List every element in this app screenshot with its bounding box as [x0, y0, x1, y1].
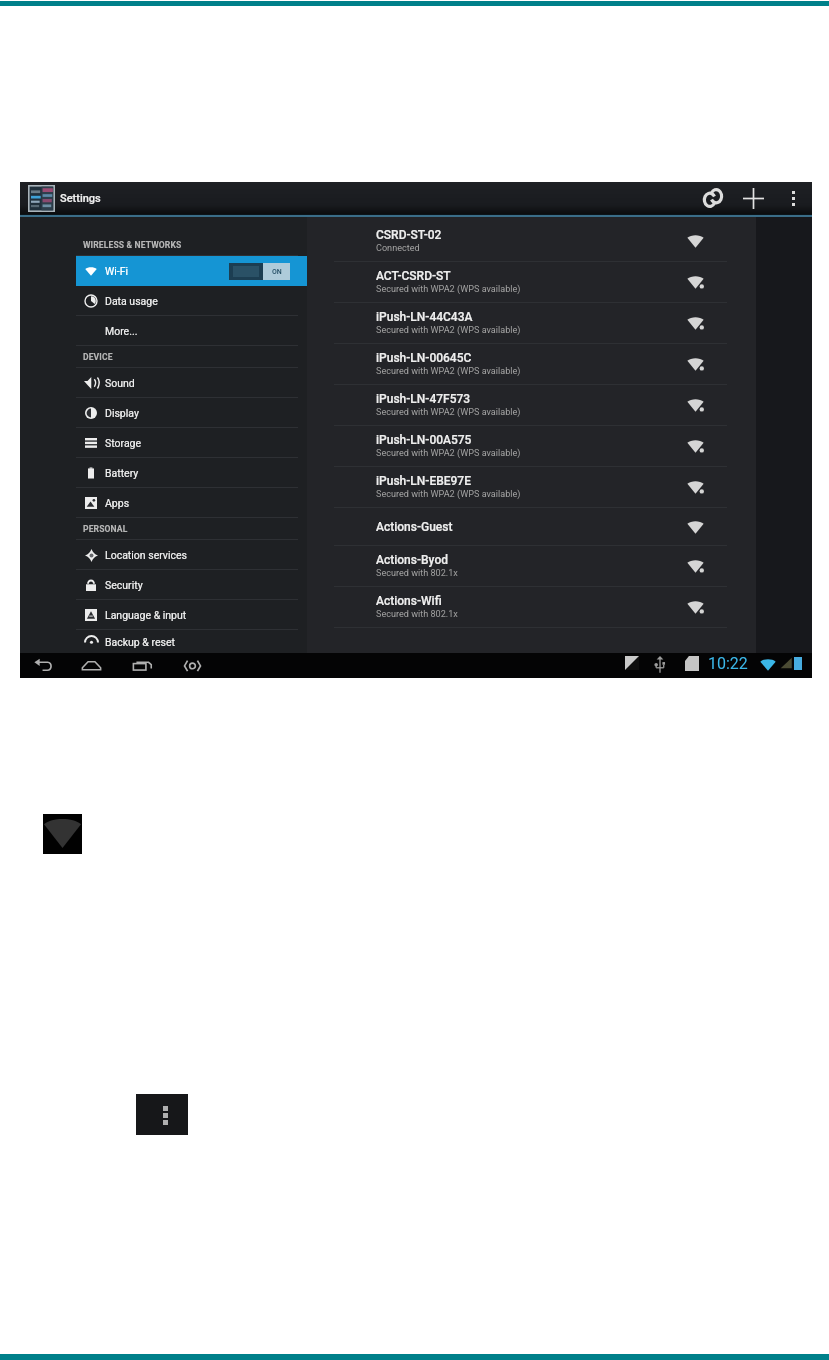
button[interactable]: iPush-LN-47F573 — [307, 385, 756, 425]
staticText: Settings — [60, 192, 101, 205]
staticText: Connected — [376, 243, 420, 254]
staticText: Actions-Guest — [376, 520, 453, 534]
staticText: Secured with WPA2 (WPS available) — [376, 489, 521, 500]
staticText: DEVICE — [83, 352, 113, 362]
staticText: Secured with WPA2 (WPS available) — [376, 448, 521, 459]
staticText: Sound — [105, 377, 135, 389]
staticText: Data usage — [105, 295, 158, 307]
button[interactable]: Add network — [733, 182, 774, 214]
staticText: iPush-LN-00645C — [376, 351, 472, 365]
button[interactable]: Sound — [76, 368, 298, 397]
staticText: Storage — [105, 437, 142, 449]
staticText: PERSONAL — [83, 524, 128, 534]
staticText: Battery — [105, 467, 139, 479]
staticText: Secured with WPA2 (WPS available) — [376, 284, 521, 295]
button[interactable]: WPS Push Button — [693, 182, 733, 214]
button[interactable]: Apps — [76, 488, 298, 517]
staticText: Actions-Byod — [376, 553, 448, 567]
button[interactable]: Home — [79, 653, 104, 678]
staticText: Secured with WPA2 (WPS available) — [376, 325, 521, 336]
staticText: iPush-LN-00A575 — [376, 433, 472, 447]
button[interactable]: Display — [76, 398, 298, 427]
staticText: Secured with WPA2 (WPS available) — [376, 407, 521, 418]
button[interactable]: iPush-LN-00A575 — [307, 426, 756, 466]
button[interactable]: Security — [76, 570, 298, 599]
staticText: Secured with WPA2 (WPS available) — [376, 366, 521, 377]
button[interactable]: Actions-Guest — [307, 508, 756, 545]
button[interactable]: Screenshot — [180, 653, 205, 678]
staticText: iPush-LN-47F573 — [376, 392, 471, 406]
staticText: CSRD-ST-02 — [376, 228, 442, 242]
button[interactable]: Actions-Wifi — [307, 587, 756, 627]
staticText: Secured with 802.1x — [376, 568, 458, 579]
staticText: ACT-CSRD-ST — [376, 269, 451, 283]
button[interactable]: Storage — [76, 428, 298, 457]
staticText: Backup & reset — [105, 636, 175, 648]
staticText: Apps — [105, 497, 130, 509]
button[interactable]: iPush-LN-00645C — [307, 344, 756, 384]
staticText: Security — [105, 579, 143, 591]
button[interactable]: More options — [774, 182, 812, 214]
staticText: Location services — [105, 549, 187, 561]
button[interactable]: Recents — [130, 653, 155, 678]
staticText: Language & input — [105, 609, 187, 621]
staticText: Actions-Wifi — [376, 594, 442, 608]
button[interactable]: Language & input — [76, 600, 298, 629]
button[interactable]: ACT-CSRD-ST — [307, 262, 756, 302]
button[interactable]: Wi-Fi — [76, 256, 307, 286]
button[interactable]: Data usage — [76, 286, 298, 315]
staticText: iPush-LN-44C43A — [376, 310, 473, 324]
button[interactable]: Actions-Byod — [307, 546, 756, 586]
staticText: Secured with 802.1x — [376, 609, 458, 620]
button[interactable]: Battery — [76, 458, 298, 487]
staticText: 10:22 — [708, 654, 748, 673]
staticText: WIRELESS & NETWORKS — [83, 240, 182, 250]
button[interactable]: iPush-LN-EBE97E — [307, 467, 756, 507]
button[interactable]: iPush-LN-44C43A — [307, 303, 756, 343]
staticText: Display — [105, 407, 139, 419]
button[interactable]: Location services — [76, 540, 298, 569]
button[interactable]: More... — [76, 316, 298, 345]
button[interactable]: CSRD-ST-02 — [307, 221, 756, 261]
staticText: ON — [272, 268, 282, 276]
button[interactable]: Back — [31, 653, 56, 678]
staticText: Wi-Fi — [105, 265, 129, 277]
staticText: More... — [105, 325, 138, 337]
staticText: iPush-LN-EBE97E — [376, 474, 471, 488]
button[interactable]: Backup & reset — [76, 630, 298, 653]
